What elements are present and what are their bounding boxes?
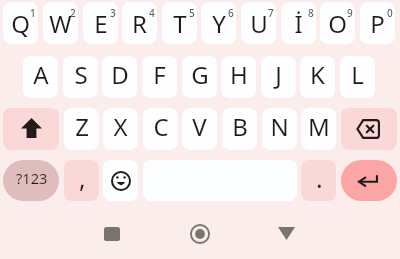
button[interactable]: G xyxy=(182,56,217,98)
button[interactable]: V xyxy=(182,108,217,150)
button[interactable]: K xyxy=(300,56,335,98)
staticText: J xyxy=(275,58,282,91)
staticText: D xyxy=(111,58,129,91)
button[interactable]: C xyxy=(143,108,178,150)
button[interactable]: O xyxy=(320,2,355,44)
staticText: 5 xyxy=(189,6,195,20)
button[interactable]: U xyxy=(241,2,276,44)
staticText: 3 xyxy=(110,6,116,20)
staticText: . xyxy=(316,161,323,195)
button[interactable]: Z xyxy=(64,108,99,150)
staticText: N xyxy=(270,110,289,143)
button[interactable]: Back xyxy=(278,227,295,240)
staticText: 0 xyxy=(387,6,393,20)
button[interactable]: İ xyxy=(281,2,316,44)
button[interactable]: N xyxy=(262,108,297,150)
button[interactable]: F xyxy=(142,56,177,98)
staticText: X xyxy=(113,110,128,143)
button[interactable]: X xyxy=(103,108,138,150)
staticText: K xyxy=(310,58,325,91)
staticText: A xyxy=(33,58,49,91)
button[interactable]: M xyxy=(301,108,336,150)
button[interactable]: J xyxy=(261,56,296,98)
staticText: C xyxy=(153,110,169,143)
button[interactable]: Y xyxy=(201,2,236,44)
button[interactable]: Emoji xyxy=(103,160,138,201)
staticText: 8 xyxy=(308,6,314,20)
button[interactable]: ?123 xyxy=(3,160,59,201)
staticText: V xyxy=(192,110,207,143)
staticText: 2 xyxy=(70,6,76,20)
button[interactable]: Home xyxy=(190,224,210,244)
staticText: O xyxy=(328,7,347,40)
staticText: 1 xyxy=(30,6,36,20)
staticText: İ xyxy=(294,7,303,40)
staticText: M xyxy=(308,110,330,143)
button[interactable]: Enter xyxy=(341,160,397,201)
staticText: 6 xyxy=(228,6,234,20)
button[interactable]: W xyxy=(43,2,78,44)
staticText: P xyxy=(370,7,385,40)
button[interactable]: P xyxy=(360,2,395,44)
staticText: R xyxy=(132,7,147,40)
staticText: 7 xyxy=(268,6,274,20)
staticText: Z xyxy=(75,110,89,143)
staticText: U xyxy=(250,7,268,40)
button[interactable]: . xyxy=(301,160,336,201)
button[interactable]: A xyxy=(23,56,58,98)
staticText: ?123 xyxy=(16,168,48,188)
button[interactable]: E xyxy=(83,2,118,44)
staticText: S xyxy=(74,58,88,91)
staticText: , xyxy=(79,161,86,195)
staticText: 9 xyxy=(347,6,353,20)
staticText: E xyxy=(94,7,108,40)
button[interactable]: Backspace xyxy=(341,108,397,150)
staticText: G xyxy=(191,58,209,91)
button[interactable]: D xyxy=(102,56,137,98)
staticText: B xyxy=(232,110,248,143)
staticText: 4 xyxy=(149,6,155,20)
staticText: L xyxy=(351,58,364,91)
staticText: F xyxy=(153,58,166,91)
button[interactable]: B xyxy=(222,108,257,150)
button[interactable]: Recent apps xyxy=(104,227,120,241)
staticText: T xyxy=(173,7,187,40)
staticText: Q xyxy=(11,7,30,40)
button[interactable]: H xyxy=(221,56,256,98)
staticText: Y xyxy=(212,7,226,40)
button[interactable]: , xyxy=(64,160,99,201)
staticText: W xyxy=(49,7,72,40)
button[interactable]: S xyxy=(63,56,98,98)
button[interactable]: T xyxy=(162,2,197,44)
staticText: H xyxy=(230,58,248,91)
button[interactable]: R xyxy=(122,2,157,44)
button[interactable]: Shift xyxy=(3,108,59,150)
button[interactable]: Q xyxy=(3,2,38,44)
button[interactable]: L xyxy=(340,56,375,98)
